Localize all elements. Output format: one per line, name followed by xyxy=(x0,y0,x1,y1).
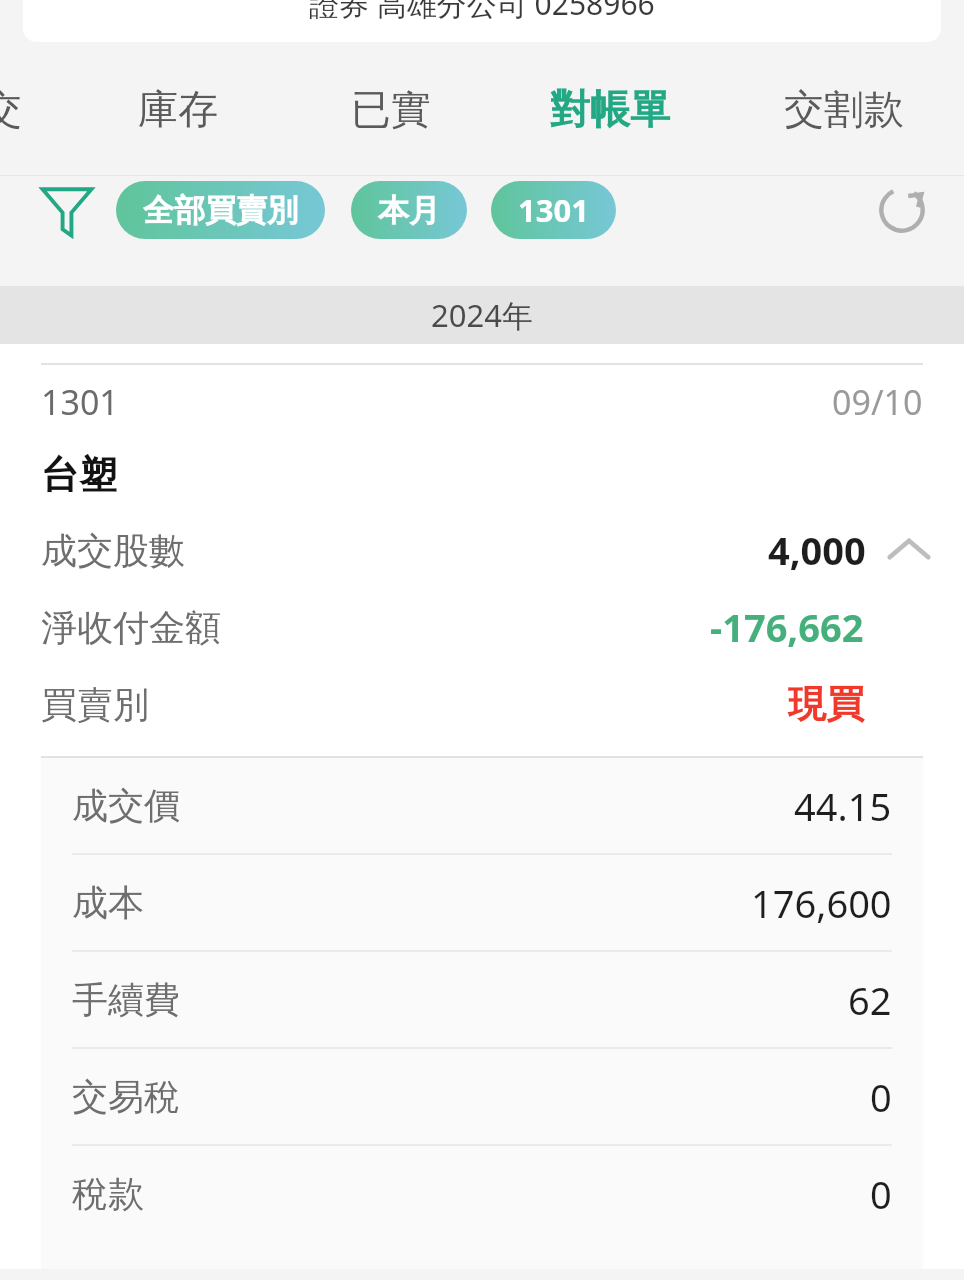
staticText: 台塑 xyxy=(41,451,117,499)
button[interactable]: 稅款 xyxy=(41,1146,923,1241)
staticText: 1301 xyxy=(518,189,589,231)
staticText: 證券 高雄分公司 0258966 xyxy=(309,0,655,24)
staticText: 全部買賣別 xyxy=(143,191,298,230)
button[interactable]: Refresh xyxy=(868,176,936,244)
staticText: 成交股數 xyxy=(41,528,185,573)
staticText: -176,662 xyxy=(710,601,864,653)
button[interactable]: 手續費 xyxy=(41,952,923,1047)
staticText: 交割款 xyxy=(784,84,904,134)
staticText: 淨收付金額 xyxy=(41,605,221,650)
button[interactable]: 成本 xyxy=(41,855,923,950)
staticText: 0 xyxy=(870,1071,892,1123)
staticText: 0 xyxy=(870,1168,892,1220)
staticText: 現買 xyxy=(788,680,864,728)
button[interactable]: 1301 xyxy=(491,181,616,239)
other: Collapse xyxy=(884,525,934,575)
staticText: 交易稅 xyxy=(72,1074,180,1119)
staticText: 09/10 xyxy=(832,379,923,425)
staticText: 交 xyxy=(0,84,22,134)
button[interactable]: 庫存 xyxy=(70,42,286,176)
staticText: 176,600 xyxy=(751,877,892,929)
staticText: 成交價 xyxy=(72,783,180,828)
staticText: 買賣別 xyxy=(41,682,149,727)
button[interactable]: 對帳單 xyxy=(496,42,724,176)
button[interactable]: 交易稅 xyxy=(41,1049,923,1144)
button[interactable]: Filter xyxy=(34,177,100,243)
button[interactable]: 本月 xyxy=(351,181,467,239)
button[interactable]: 證券 高雄分公司 0258966 xyxy=(23,0,941,42)
button[interactable]: 已實 xyxy=(286,42,496,176)
staticText: 對帳單 xyxy=(550,84,670,134)
button[interactable]: 成交價 xyxy=(41,758,923,853)
staticText: 庫存 xyxy=(138,84,218,134)
button[interactable]: 交割款 xyxy=(724,42,964,176)
staticText: 手續費 xyxy=(72,977,180,1022)
staticText: 成本 xyxy=(72,880,144,925)
staticText: 本月 xyxy=(378,191,440,230)
staticText: 已實 xyxy=(351,84,431,134)
button[interactable]: 1301 xyxy=(0,344,964,1269)
staticText: 44.15 xyxy=(794,780,892,832)
staticText: 1301 xyxy=(41,379,119,425)
staticText: 稅款 xyxy=(72,1171,144,1216)
button[interactable]: 交 xyxy=(0,42,70,176)
staticText: 4,000 xyxy=(768,524,866,576)
button[interactable]: 全部買賣別 xyxy=(116,181,325,239)
staticText: 62 xyxy=(848,974,892,1026)
staticText: 2024年 xyxy=(431,294,533,336)
